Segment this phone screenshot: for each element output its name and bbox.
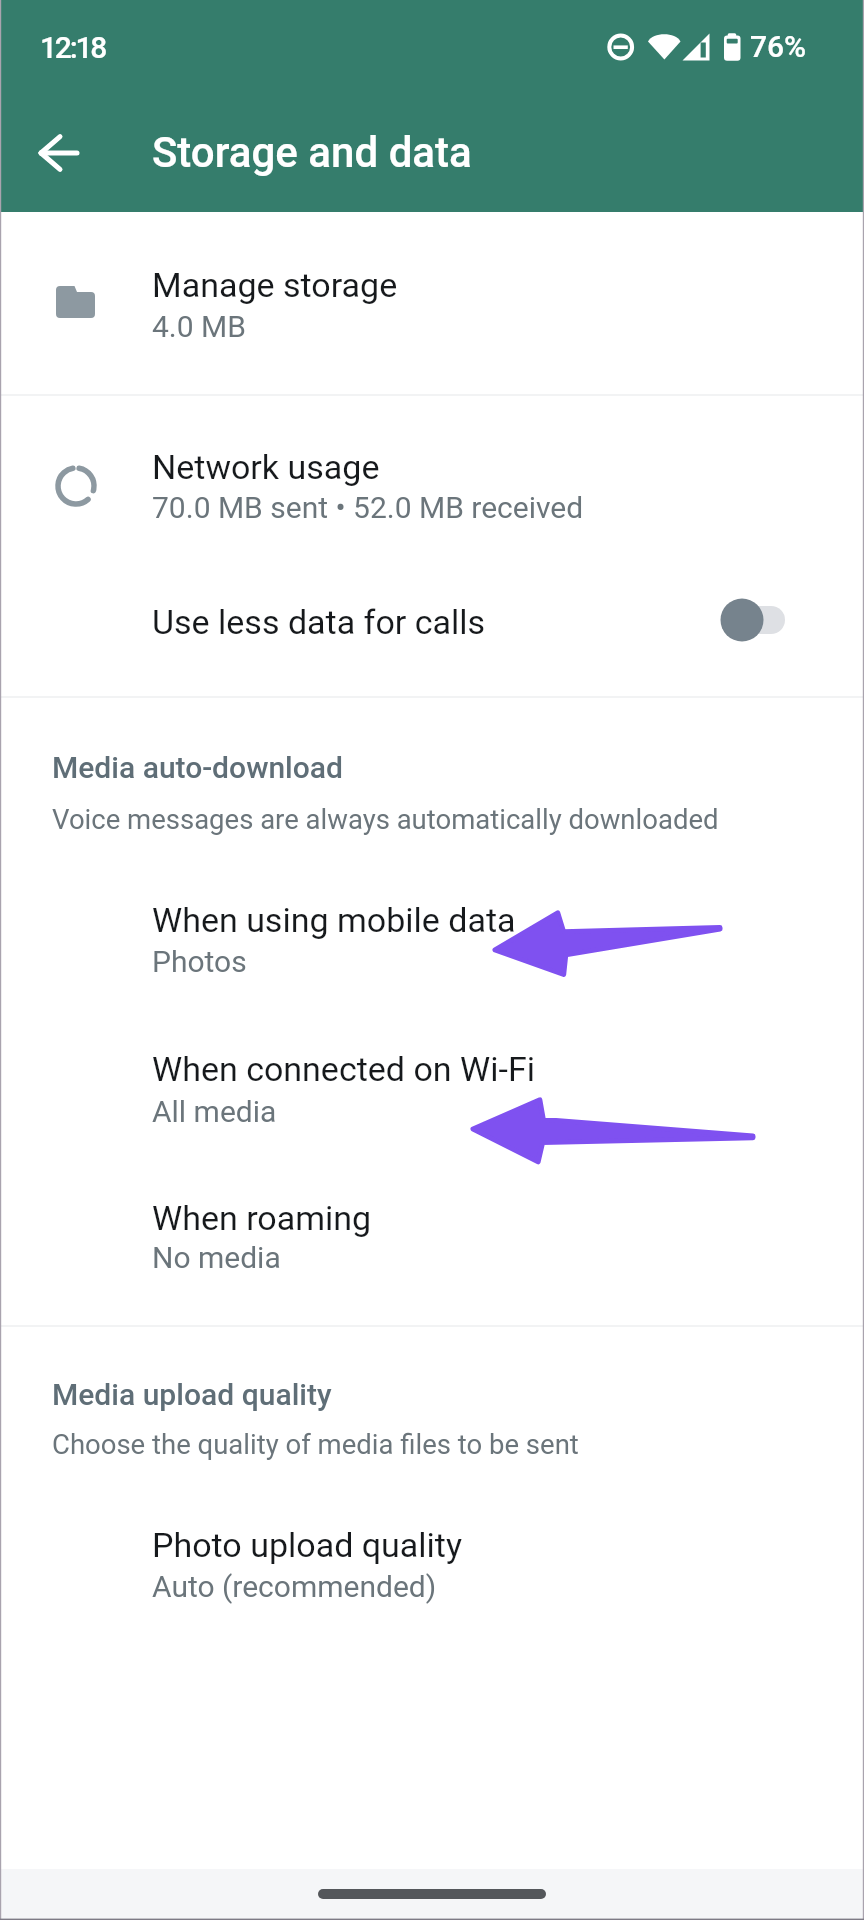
staticText: 76% [750,29,807,64]
button[interactable]: Manage storage [0,212,864,394]
button[interactable]: Photo upload quality [0,1494,864,1642]
other: Home [318,1889,546,1899]
staticText: Manage storage [152,265,398,305]
staticText: Media auto-download [52,750,344,785]
staticText: 12:18 [40,30,106,65]
staticText: 70.0 MB sent • 52.0 MB received [152,490,584,525]
staticText: Voice messages are always automatically … [52,803,719,835]
staticText: When roaming [152,1198,372,1238]
button[interactable]: Navigate up [11,105,107,201]
staticText: When using mobile data [152,900,516,940]
staticText: Photos [152,944,247,979]
button[interactable]: When connected on Wi-Fi [0,1020,864,1168]
staticText: Photo upload quality [152,1525,463,1565]
staticText: Storage and data [152,128,472,177]
button[interactable]: When roaming [0,1170,864,1318]
staticText: Network usage [152,447,380,487]
staticText: No media [152,1240,281,1275]
staticText: Media upload quality [52,1377,332,1412]
staticText: 4.0 MB [152,309,246,344]
staticText: Use less data for calls [152,602,486,642]
staticText: Auto (recommended) [152,1569,437,1604]
staticText: When connected on Wi-Fi [152,1049,535,1089]
staticText: All media [152,1094,277,1129]
staticText: Choose the quality of media files to be … [52,1428,579,1460]
button[interactable]: Network usage [0,396,864,546]
button[interactable]: Use less data for calls [0,548,864,696]
button[interactable]: When using mobile data [0,870,864,1018]
